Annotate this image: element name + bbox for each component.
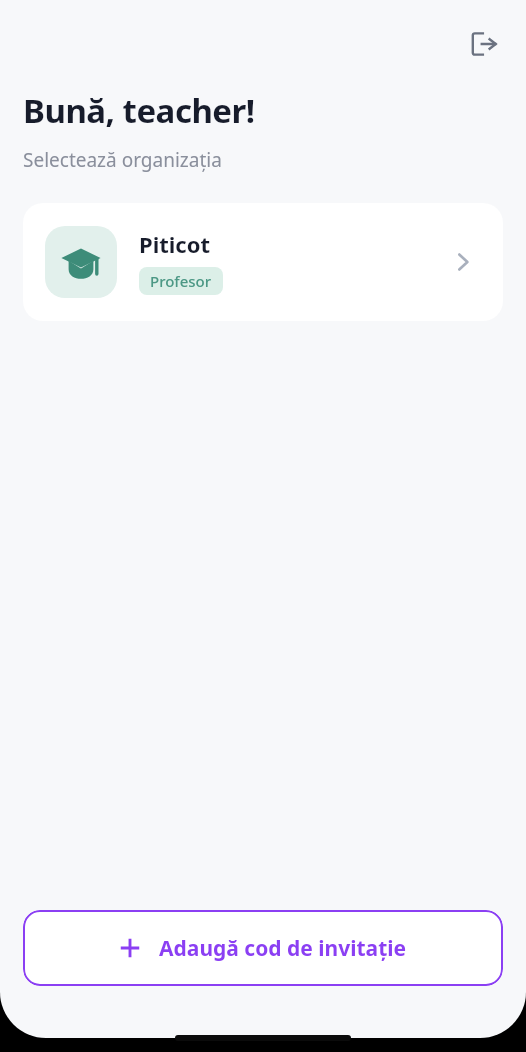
staticText: Piticot	[139, 229, 211, 259]
button[interactable]: Deconectare	[460, 20, 508, 68]
button[interactable]: Adaugă cod de invitație	[23, 910, 503, 986]
staticText: Selectează organizația	[23, 147, 222, 173]
staticText: Bună, teacher!	[23, 88, 255, 133]
staticText: Profesor	[150, 271, 212, 291]
button[interactable]: Piticot	[23, 203, 503, 321]
staticText: Adaugă cod de invitație	[159, 934, 407, 963]
